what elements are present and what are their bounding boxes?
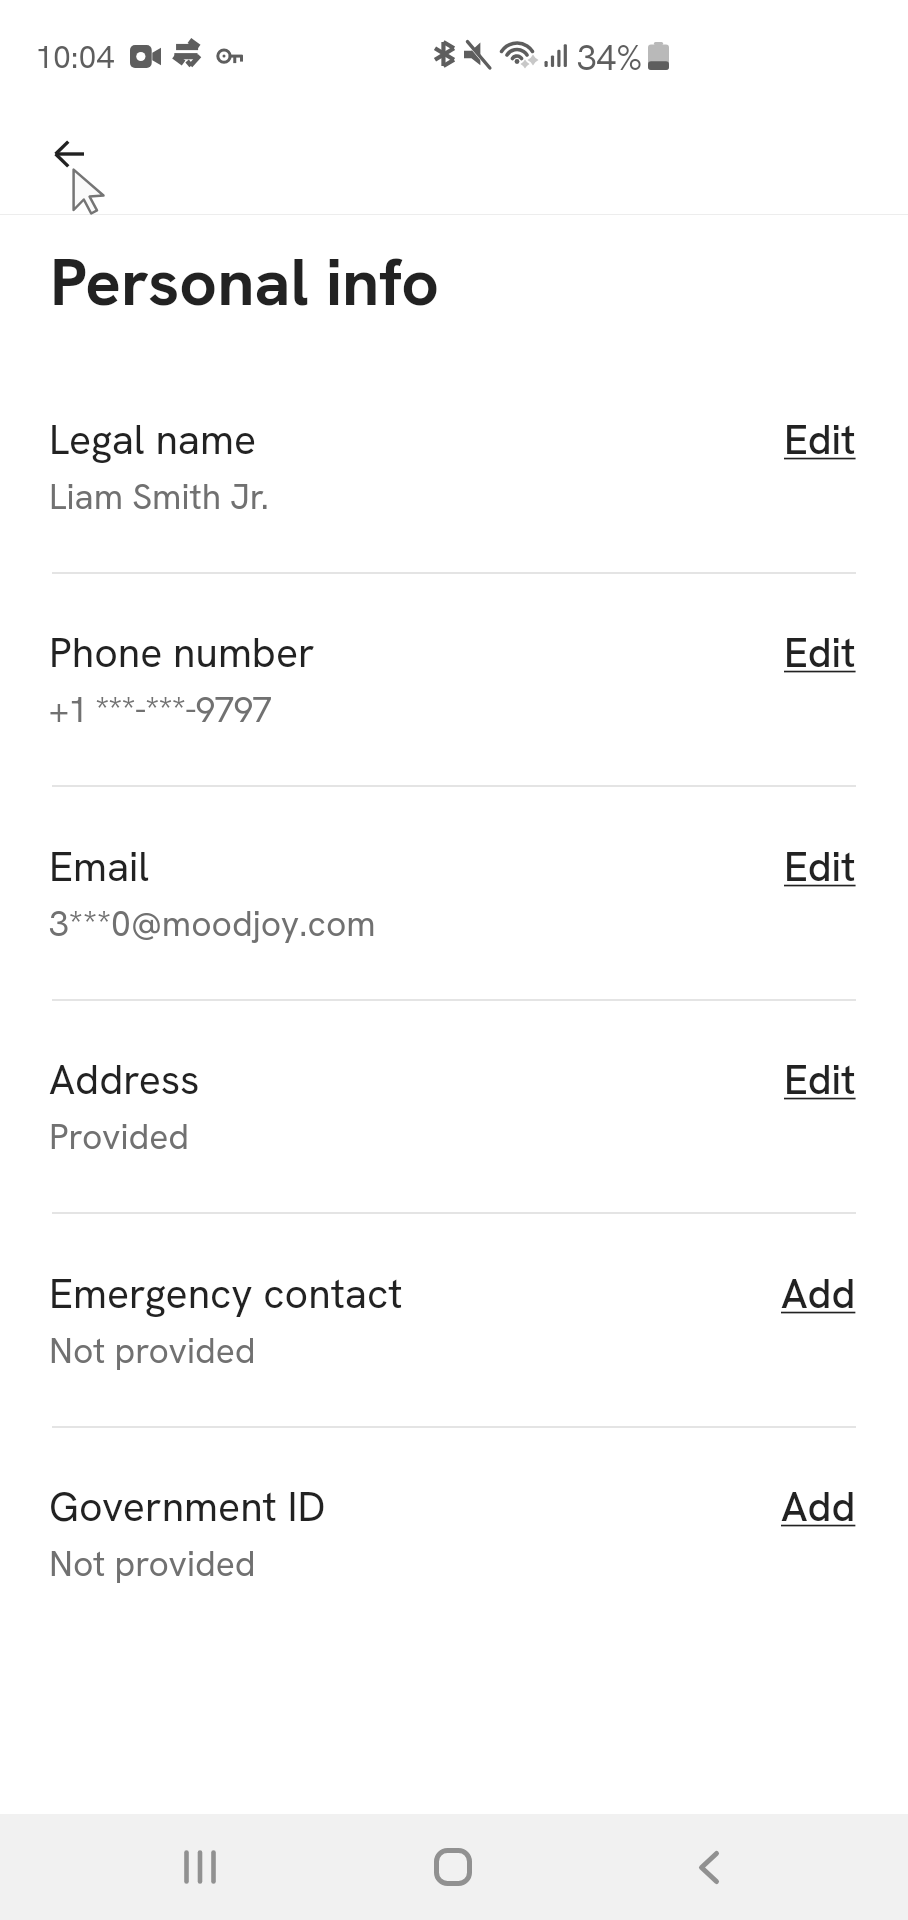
staticText: Provided bbox=[49, 1114, 190, 1160]
staticText: Email bbox=[49, 840, 150, 893]
button[interactable]: Legal name bbox=[0, 400, 908, 572]
button[interactable]: Recent apps bbox=[145, 1814, 255, 1920]
button[interactable]: Emergency contact bbox=[0, 1254, 908, 1426]
staticText: Liam Smith Jr. bbox=[49, 474, 270, 520]
staticText: Edit bbox=[784, 413, 856, 466]
staticText: Edit bbox=[784, 1053, 856, 1106]
staticText: Not provided bbox=[49, 1541, 256, 1587]
staticText: Emergency contact bbox=[49, 1267, 403, 1320]
staticText: Legal name bbox=[49, 413, 257, 466]
button[interactable]: Home bbox=[398, 1814, 508, 1920]
button[interactable]: Email bbox=[0, 827, 908, 999]
button[interactable]: Government ID bbox=[0, 1467, 908, 1639]
button[interactable]: Address bbox=[0, 1040, 908, 1212]
button[interactable]: Back bbox=[654, 1814, 764, 1920]
button[interactable]: Back bbox=[25, 110, 113, 198]
staticText: +1 ***-***-9797 bbox=[49, 687, 272, 733]
staticText: Address bbox=[49, 1053, 200, 1106]
staticText: Phone number bbox=[49, 626, 315, 679]
button[interactable]: Phone number bbox=[0, 613, 908, 785]
staticText: Government ID bbox=[49, 1480, 326, 1533]
staticText: Add bbox=[781, 1480, 856, 1533]
staticText: Add bbox=[781, 1267, 856, 1320]
staticText: Personal info bbox=[50, 239, 440, 325]
staticText: 3***0@moodjoy.com bbox=[49, 901, 376, 947]
staticText: Edit bbox=[784, 840, 856, 893]
staticText: 10:04 bbox=[35, 36, 115, 78]
staticText: 34% bbox=[577, 35, 643, 81]
staticText: Not provided bbox=[49, 1328, 256, 1374]
staticText: Edit bbox=[784, 626, 856, 679]
